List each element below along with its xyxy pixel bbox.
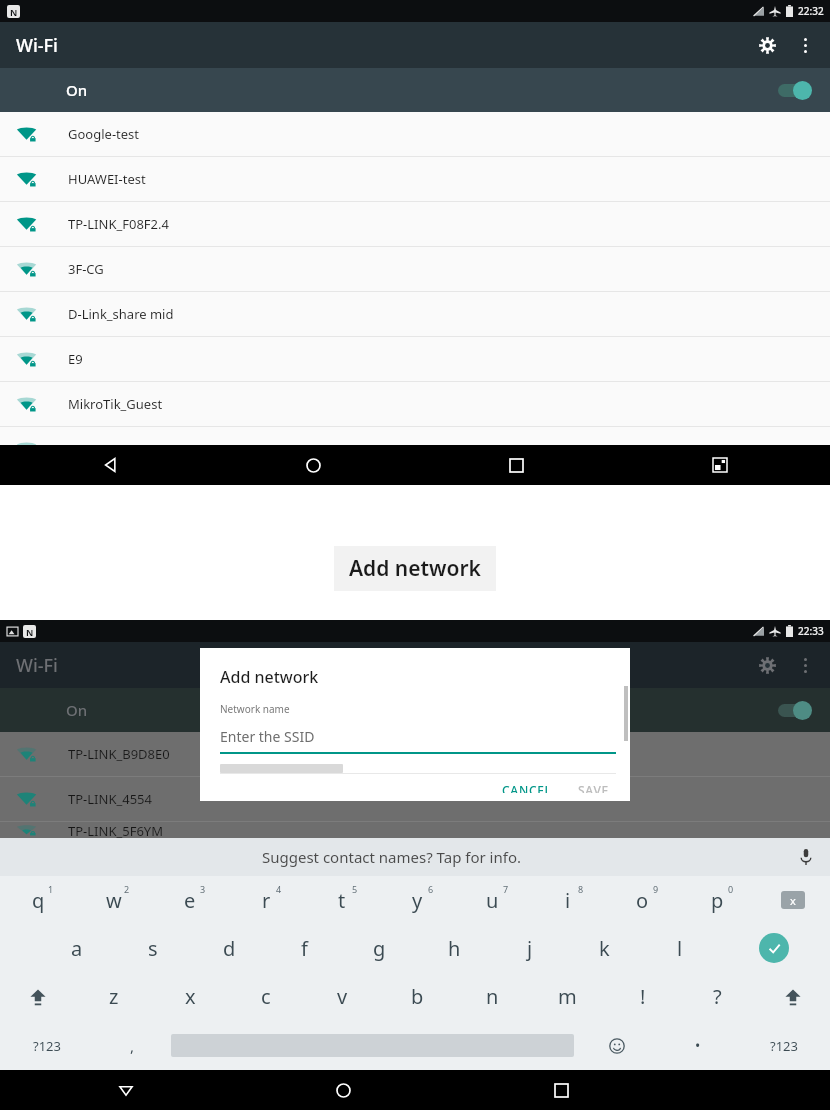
button[interactable]: MT-Home: [0, 427, 830, 471]
staticText: c: [261, 983, 271, 1010]
button[interactable]: Recents: [467, 445, 566, 485]
button[interactable]: MikroTik_Guest: [0, 382, 830, 426]
staticText: N: [10, 6, 18, 18]
staticText: Suggest contact names? Tap for info.: [262, 847, 521, 867]
staticText: m: [558, 983, 577, 1010]
button[interactable]: v: [304, 972, 380, 1021]
button[interactable]: Recents: [512, 1070, 611, 1110]
button[interactable]: Suggest contact names? Tap for info.: [0, 838, 830, 876]
staticText: 22:33: [798, 624, 824, 638]
button[interactable]: b: [380, 972, 455, 1021]
button[interactable]: h: [417, 924, 492, 972]
staticText: 22:32: [798, 4, 824, 18]
button[interactable]: On: [0, 68, 830, 112]
button[interactable]: Back: [61, 445, 160, 485]
button[interactable]: Delete: [755, 876, 830, 924]
button[interactable]: ?123: [0, 1021, 93, 1070]
staticText: i: [565, 887, 571, 914]
button[interactable]: y: [380, 876, 455, 924]
staticText: TP-LINK_B9D8E0: [68, 745, 170, 763]
staticText: ?: [713, 983, 722, 1010]
button[interactable]: c: [228, 972, 304, 1021]
button[interactable]: Shift: [0, 972, 76, 1021]
button[interactable]: CANCEL: [489, 774, 565, 801]
button[interactable]: Screenshot: [670, 445, 769, 485]
button[interactable]: s: [115, 924, 191, 972]
button[interactable]: ,: [93, 1021, 171, 1070]
button[interactable]: TP-LINK_4554: [0, 777, 830, 821]
button[interactable]: Hide keyboard: [76, 1070, 175, 1110]
button[interactable]: ?123: [737, 1021, 830, 1070]
button[interactable]: Home: [264, 445, 363, 485]
button[interactable]: Settings: [750, 648, 784, 682]
staticText: o: [636, 887, 649, 914]
staticText: r: [262, 887, 271, 914]
staticText: z: [109, 983, 119, 1010]
staticText: g: [373, 935, 386, 962]
button[interactable]: w: [76, 876, 152, 924]
button[interactable]: Shift: [755, 972, 830, 1021]
button[interactable]: TP-LINK_F08F2.4: [0, 202, 830, 246]
button[interactable]: p: [680, 876, 755, 924]
button[interactable]: t: [304, 876, 380, 924]
button[interactable]: More options: [790, 650, 820, 680]
staticText: On: [66, 700, 88, 720]
button[interactable]: j: [492, 924, 567, 972]
staticText: x: [790, 893, 796, 908]
staticText: b: [411, 983, 424, 1010]
button[interactable]: i: [530, 876, 605, 924]
other: Voice input: [782, 849, 830, 865]
button[interactable]: r: [228, 876, 304, 924]
button[interactable]: Home: [294, 1070, 393, 1110]
button[interactable]: a: [39, 924, 115, 972]
button[interactable]: Settings: [750, 28, 784, 62]
button[interactable]: d: [191, 924, 267, 972]
staticText: s: [148, 935, 158, 962]
button[interactable]: n: [455, 972, 530, 1021]
staticText: SAVE: [578, 782, 609, 793]
button[interactable]: More options: [790, 30, 820, 60]
button[interactable]: HUAWEI-test: [0, 157, 830, 201]
button[interactable]: l: [642, 924, 717, 972]
button[interactable]: Add network: [334, 546, 496, 591]
staticText: On: [66, 80, 88, 100]
button[interactable]: g: [342, 924, 417, 972]
button[interactable]: o: [605, 876, 680, 924]
button[interactable]: On: [0, 688, 830, 732]
button[interactable]: •: [659, 1021, 737, 1070]
button[interactable]: TP-LINK_B9D8E0: [0, 732, 830, 776]
button[interactable]: f: [267, 924, 342, 972]
button[interactable]: 3F-CG: [0, 247, 830, 291]
staticText: MT-Home: [68, 440, 128, 458]
staticText: 9: [653, 883, 659, 895]
button[interactable]: z: [76, 972, 152, 1021]
button[interactable]: !: [605, 972, 680, 1021]
staticText: h: [448, 935, 461, 962]
staticText: 1: [48, 883, 54, 895]
button[interactable]: ?: [680, 972, 755, 1021]
button[interactable]: x: [152, 972, 228, 1021]
staticText: TP-LINK_4554: [68, 790, 152, 808]
staticText: 4: [276, 883, 282, 895]
staticText: Enter the SSID: [220, 727, 315, 746]
button[interactable]: u: [455, 876, 530, 924]
button[interactable]: Enter: [717, 924, 830, 972]
button[interactable]: k: [567, 924, 642, 972]
staticText: a: [71, 935, 83, 962]
button[interactable]: m: [530, 972, 605, 1021]
button[interactable]: SAVE: [565, 774, 622, 801]
button[interactable]: q: [0, 876, 76, 924]
button[interactable]: TP-LINK_5F6YM: [0, 822, 830, 838]
staticText: ,: [130, 1036, 135, 1056]
staticText: TP-LINK_F08F2.4: [68, 215, 169, 233]
button[interactable]: Google-test: [0, 112, 830, 156]
staticText: Add network: [220, 666, 319, 688]
staticText: Wi-Fi: [16, 33, 58, 58]
button[interactable]: e: [152, 876, 228, 924]
staticText: u: [486, 887, 499, 914]
button[interactable]: D-Link_share mid: [0, 292, 830, 336]
button[interactable]: E9: [0, 337, 830, 381]
staticText: ?123: [33, 1037, 61, 1055]
button[interactable]: Emoji: [574, 1021, 659, 1070]
